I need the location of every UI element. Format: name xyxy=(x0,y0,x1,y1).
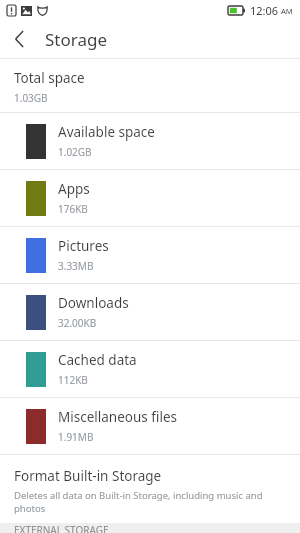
staticText: Apps xyxy=(58,180,90,198)
button[interactable]: Format Built-in Storage xyxy=(0,455,300,523)
button[interactable]: Downloads xyxy=(0,284,300,340)
staticText: 1.02GB xyxy=(58,145,92,159)
staticText: AM xyxy=(281,6,293,16)
button[interactable]: Total space xyxy=(0,59,300,112)
staticText: Downloads xyxy=(58,294,129,312)
staticText: 1.91MB xyxy=(58,430,94,444)
button[interactable]: Cached data xyxy=(0,341,300,397)
staticText: Miscellaneous files xyxy=(58,408,177,426)
staticText: 32.00KB xyxy=(58,316,97,330)
staticText: EXTERNAL STORAGE xyxy=(14,523,109,533)
button[interactable]: Apps xyxy=(0,170,300,226)
staticText: Available space xyxy=(58,123,155,141)
staticText: Format Built-in Storage xyxy=(14,467,162,485)
staticText: 3.33MB xyxy=(58,259,94,273)
button[interactable]: Back xyxy=(0,20,38,58)
staticText: Total space xyxy=(14,69,85,87)
staticText: Pictures xyxy=(58,237,109,255)
button[interactable]: Miscellaneous files xyxy=(0,398,300,454)
staticText: 12:06 xyxy=(250,3,279,18)
button[interactable]: Available space xyxy=(0,113,300,169)
staticText: Cached data xyxy=(58,351,137,369)
staticText: 112KB xyxy=(58,373,88,387)
button[interactable]: Pictures xyxy=(0,227,300,283)
staticText: 1.03GB xyxy=(14,91,48,105)
staticText: 176KB xyxy=(58,202,88,216)
staticText: Storage xyxy=(45,28,108,51)
staticText: Deletes all data on Built-in Storage, in… xyxy=(14,489,286,515)
